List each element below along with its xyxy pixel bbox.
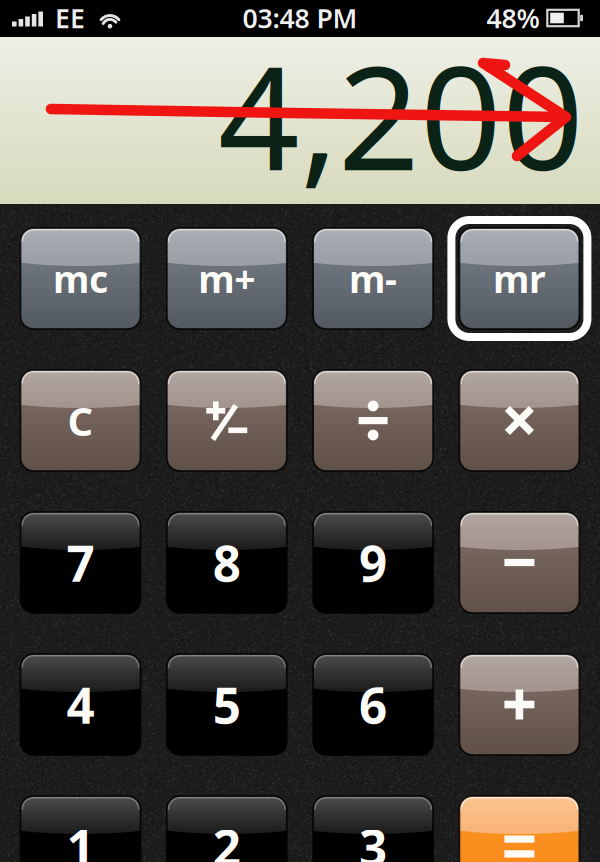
staticText: EE <box>55 0 85 36</box>
staticText: 9 <box>359 530 387 595</box>
staticText: mr <box>493 254 546 303</box>
button[interactable]: 6 <box>313 654 433 755</box>
staticText: 3 <box>359 814 387 862</box>
button[interactable]: mr <box>459 228 579 329</box>
staticText: m+ <box>198 254 255 303</box>
button[interactable]: Multiply <box>459 370 579 471</box>
button[interactable]: 3 <box>313 796 433 862</box>
staticText: 6 <box>359 672 387 737</box>
button[interactable]: 9 <box>313 512 433 613</box>
staticText: 4 <box>66 672 94 737</box>
button[interactable]: Equals <box>459 796 579 862</box>
button[interactable]: C <box>20 370 140 471</box>
button[interactable]: 4 <box>20 654 140 755</box>
button[interactable]: m+ <box>167 228 287 329</box>
staticText: 48% <box>486 0 539 36</box>
staticText: m- <box>349 254 397 303</box>
staticText: 8 <box>213 530 241 595</box>
staticText: 1 <box>66 814 94 862</box>
staticText: 5 <box>213 672 241 737</box>
staticText: 7 <box>66 530 94 595</box>
button[interactable]: mc <box>20 228 140 329</box>
button[interactable]: m- <box>313 228 433 329</box>
button[interactable]: Plus <box>459 654 579 755</box>
button[interactable]: 8 <box>167 512 287 613</box>
button[interactable]: 1 <box>20 796 140 862</box>
staticText: mc <box>53 254 108 303</box>
button[interactable]: 5 <box>167 654 287 755</box>
button[interactable]: Divide <box>313 370 433 471</box>
button[interactable]: 7 <box>20 512 140 613</box>
staticText: 4,200 <box>218 20 584 210</box>
staticText: C <box>67 394 93 447</box>
button[interactable]: Minus <box>459 512 579 613</box>
button[interactable]: Plus minus <box>167 370 287 471</box>
staticText: 03:48 PM <box>242 0 357 36</box>
button[interactable]: 2 <box>167 796 287 862</box>
staticText: 2 <box>213 814 241 862</box>
